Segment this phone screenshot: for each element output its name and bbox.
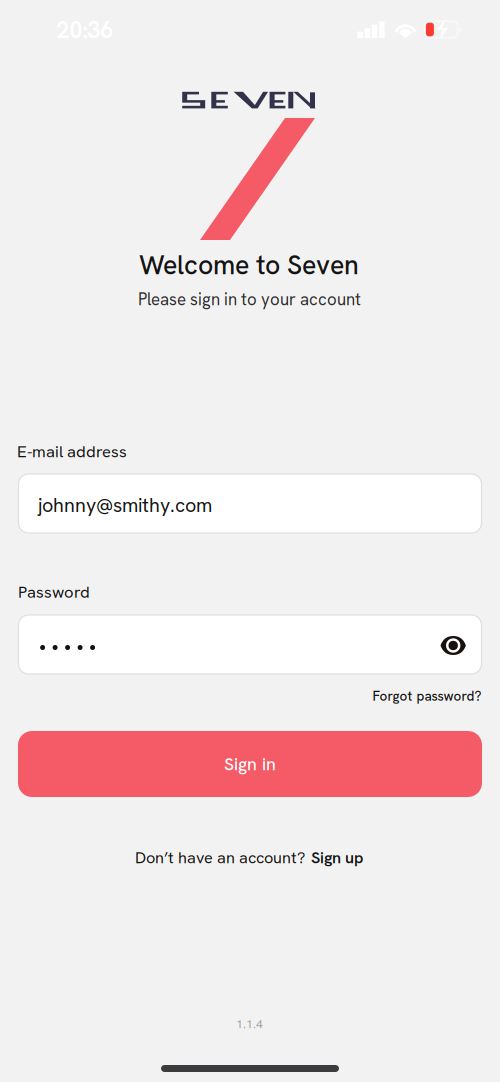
staticText: Sign in xyxy=(224,752,276,775)
button[interactable]: Sign up xyxy=(311,847,363,868)
staticText: Don’t have an account? xyxy=(135,847,305,868)
staticText: Please sign in to your account xyxy=(138,289,361,310)
staticText: Sign up xyxy=(311,847,363,868)
button[interactable]: E-mail address, johnny@smithy.com xyxy=(18,474,481,533)
staticText: Password xyxy=(18,581,90,603)
staticText: E-mail address xyxy=(17,441,127,462)
button[interactable]: Forgot password? xyxy=(372,687,481,705)
staticText: 1.1.4 xyxy=(236,1016,263,1032)
staticText: 20:36 xyxy=(56,15,113,45)
staticText: Welcome to Seven xyxy=(139,248,359,282)
button[interactable]: Show password xyxy=(431,623,475,667)
staticText: johnny@smithy.com xyxy=(38,492,212,518)
staticText: Forgot password? xyxy=(372,687,481,705)
button[interactable]: Password, secure text field xyxy=(18,615,481,674)
button[interactable]: Sign in xyxy=(18,731,482,797)
